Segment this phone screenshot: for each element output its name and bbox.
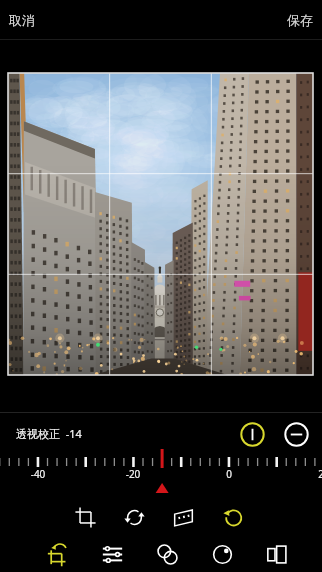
staticText: 20 [308, 467, 322, 481]
staticText: 0 [213, 467, 245, 481]
staticText: -40 [22, 467, 54, 481]
button[interactable]: Color [207, 539, 237, 569]
button[interactable]: 保存 [278, 4, 322, 36]
button[interactable]: Transform [42, 539, 72, 569]
staticText: -20 [117, 467, 149, 481]
button[interactable]: Vertical perspective [236, 418, 268, 450]
button[interactable]: Reset [217, 502, 247, 532]
button[interactable]: Rotate [119, 502, 149, 532]
staticText: 保存 [287, 12, 313, 28]
button[interactable]: Effects [152, 539, 182, 569]
button[interactable]: Crop [70, 502, 100, 532]
button[interactable]: Frames [262, 539, 292, 569]
button[interactable]: Perspective [168, 502, 198, 532]
staticText: 取消 [9, 12, 35, 28]
button[interactable]: Adjust [97, 539, 127, 569]
staticText: 透视校正 -14 [16, 426, 82, 441]
button[interactable]: 取消 [0, 4, 44, 36]
button[interactable]: Horizontal perspective [280, 418, 312, 450]
